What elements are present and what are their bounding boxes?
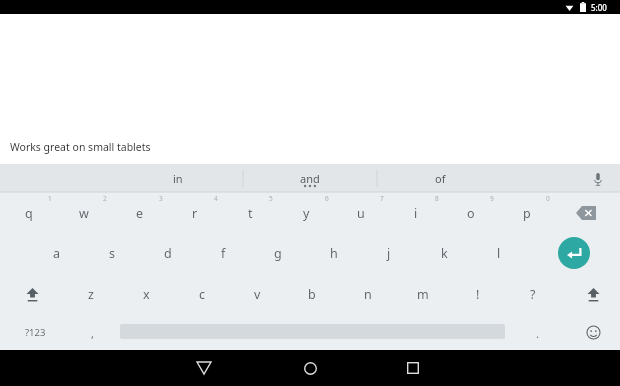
button[interactable]: Voice input <box>584 168 612 190</box>
staticText: a <box>53 245 61 262</box>
button[interactable]: in <box>114 164 242 192</box>
button[interactable]: j <box>369 240 409 266</box>
button[interactable]: z <box>71 281 111 307</box>
button[interactable]: m <box>403 281 443 307</box>
button[interactable]: f <box>203 240 243 266</box>
staticText: u <box>357 205 365 222</box>
button[interactable]: t <box>230 200 270 226</box>
staticText: . <box>536 326 539 341</box>
button[interactable]: Shift <box>17 282 47 306</box>
staticText: ! <box>476 286 480 303</box>
staticText: Works great on small tablets <box>10 140 151 154</box>
button[interactable]: p <box>507 200 547 226</box>
button[interactable]: s <box>92 240 132 266</box>
staticText: x <box>143 286 150 303</box>
staticText: 7 <box>380 194 384 203</box>
button[interactable]: h <box>314 240 354 266</box>
staticText: s <box>109 245 115 262</box>
button[interactable]: of <box>376 164 504 192</box>
staticText: i <box>414 205 418 222</box>
staticText: y <box>303 205 310 222</box>
staticText: 3 <box>159 194 163 203</box>
staticText: h <box>330 245 338 262</box>
staticText: l <box>497 245 501 262</box>
button[interactable]: k <box>424 240 464 266</box>
staticText: 2 <box>103 194 107 203</box>
staticText: b <box>308 286 316 303</box>
staticText: 1 <box>48 194 52 203</box>
button[interactable]: Enter <box>558 237 590 269</box>
staticText: 8 <box>435 194 439 203</box>
button[interactable]: ! <box>458 281 498 307</box>
staticText: q <box>25 205 33 222</box>
button[interactable]: . <box>517 320 557 346</box>
staticText: in <box>173 171 183 186</box>
staticText: of <box>435 171 446 186</box>
staticText: j <box>387 245 391 262</box>
staticText: t <box>248 205 253 222</box>
staticText: v <box>254 286 261 303</box>
button[interactable]: Back <box>188 352 220 384</box>
button[interactable]: v <box>237 281 277 307</box>
staticText: r <box>192 205 198 222</box>
staticText: p <box>523 205 531 222</box>
button[interactable]: q <box>9 200 49 226</box>
staticText: 5:00 <box>591 2 607 13</box>
button[interactable]: Shift <box>578 282 608 306</box>
button[interactable]: i <box>396 200 436 226</box>
staticText: 0 <box>546 194 550 203</box>
staticText: ?123 <box>25 326 46 339</box>
button[interactable]: w <box>64 200 104 226</box>
button[interactable]: u <box>341 200 381 226</box>
staticText: ? <box>530 286 536 303</box>
staticText: m <box>417 286 429 303</box>
button[interactable]: c <box>182 281 222 307</box>
button[interactable]: y <box>286 200 326 226</box>
staticText: 5 <box>269 194 273 203</box>
staticText: z <box>88 286 94 303</box>
staticText: o <box>467 205 475 222</box>
button[interactable]: d <box>148 240 188 266</box>
button[interactable]: x <box>126 281 166 307</box>
staticText: n <box>364 286 372 303</box>
staticText: 4 <box>214 194 218 203</box>
button[interactable]: and <box>246 164 374 192</box>
staticText: w <box>79 205 89 222</box>
button[interactable]: Backspace <box>570 201 602 225</box>
button[interactable]: ? <box>513 281 553 307</box>
staticText: 9 <box>490 194 494 203</box>
button[interactable]: r <box>175 200 215 226</box>
button[interactable]: g <box>258 240 298 266</box>
staticText: and <box>300 171 320 186</box>
staticText: , <box>91 326 94 341</box>
staticText: 6 <box>325 194 329 203</box>
button[interactable]: e <box>120 200 160 226</box>
staticText: k <box>441 245 448 262</box>
button[interactable]: o <box>451 200 491 226</box>
staticText: c <box>199 286 206 303</box>
button[interactable]: a <box>37 240 77 266</box>
staticText: e <box>136 205 144 222</box>
button[interactable]: n <box>348 281 388 307</box>
other: Battery <box>580 2 586 12</box>
staticText: f <box>221 245 226 262</box>
button[interactable]: b <box>292 281 332 307</box>
staticText: g <box>274 245 282 262</box>
button[interactable]: Emoji <box>578 320 608 344</box>
button[interactable]: , <box>72 320 112 346</box>
button[interactable]: ?123 <box>14 320 56 344</box>
button[interactable]: Home <box>294 352 326 384</box>
staticText: d <box>164 245 172 262</box>
button[interactable]: l <box>479 240 519 266</box>
button[interactable]: Recent apps <box>397 352 429 384</box>
other: Wi-Fi <box>565 3 574 12</box>
